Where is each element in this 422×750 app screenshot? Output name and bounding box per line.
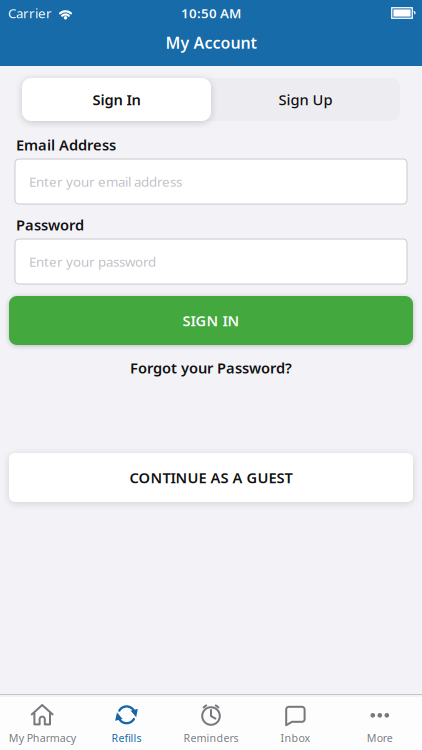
- button[interactable]: Reminders: [169, 702, 253, 745]
- button[interactable]: Sign Up: [211, 78, 400, 121]
- staticText: Enter your email address: [29, 173, 182, 190]
- button[interactable]: Forgot your Password?: [130, 358, 292, 377]
- staticText: Refills: [112, 731, 142, 745]
- staticText: Sign Up: [278, 90, 332, 109]
- button[interactable]: SIGN IN: [9, 296, 413, 345]
- button[interactable]: More: [338, 702, 422, 745]
- staticText: Forgot your Password?: [130, 358, 292, 377]
- staticText: 10:50 AM: [181, 4, 241, 22]
- button[interactable]: Inbox: [253, 702, 338, 745]
- staticText: Email Address: [16, 135, 116, 154]
- button[interactable]: My Pharmacy: [0, 702, 84, 745]
- button[interactable]: CONTINUE AS A GUEST: [9, 453, 413, 502]
- staticText: More: [367, 731, 393, 745]
- button[interactable]: Refills: [84, 702, 169, 745]
- staticText: Password: [16, 215, 84, 234]
- staticText: Carrier: [8, 4, 52, 22]
- button[interactable]: Sign In: [22, 78, 211, 121]
- staticText: SIGN IN: [182, 311, 239, 330]
- staticText: Sign In: [92, 90, 140, 109]
- staticText: My Account: [165, 32, 256, 53]
- staticText: My Pharmacy: [9, 731, 76, 745]
- staticText: Enter your password: [29, 253, 156, 270]
- staticText: CONTINUE AS A GUEST: [129, 468, 292, 487]
- staticText: Reminders: [183, 731, 238, 745]
- staticText: Inbox: [280, 731, 310, 745]
